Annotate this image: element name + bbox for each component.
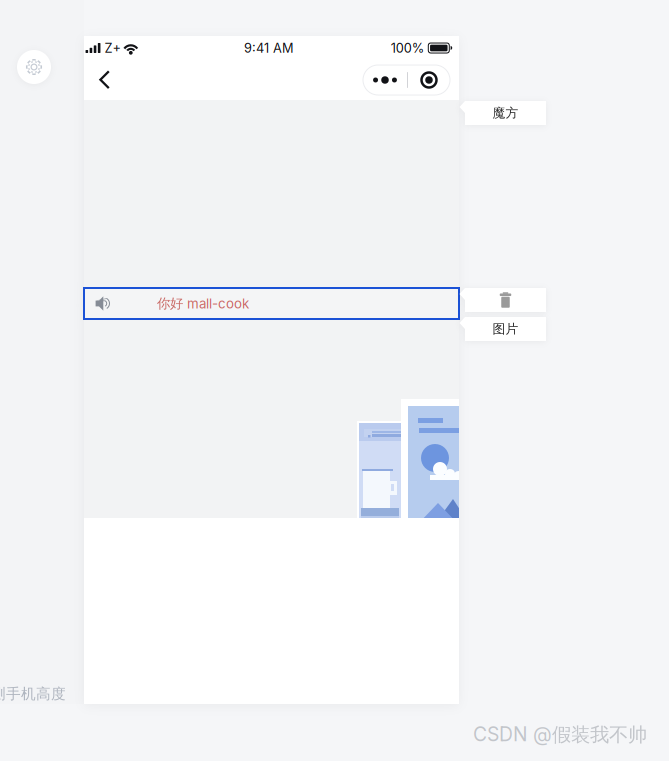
staticText: Z+ (104, 40, 120, 56)
button[interactable]: Settings (17, 50, 51, 84)
button[interactable]: 魔方 (459, 101, 546, 125)
staticText: 9:41 AM (244, 40, 294, 56)
staticText: 图片 (492, 321, 518, 337)
staticText: 测手机高度 (0, 684, 66, 703)
staticText: CSDN @假装我不帅 (473, 722, 647, 747)
button[interactable]: Delete (459, 288, 546, 312)
button[interactable]: Back (98, 61, 132, 99)
staticText: 你好 mall-cook (157, 295, 249, 312)
staticText: 100% (391, 40, 425, 56)
button[interactable]: More options (363, 65, 450, 95)
staticText: 魔方 (492, 105, 518, 121)
button[interactable]: 图片 (459, 317, 546, 341)
